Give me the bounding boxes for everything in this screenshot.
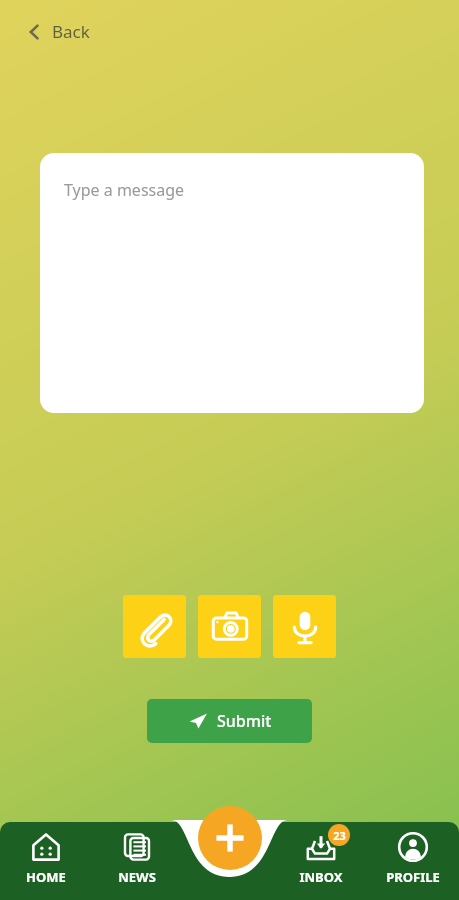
button[interactable]: HOME xyxy=(0,822,91,900)
staticText: NEWS xyxy=(118,868,156,886)
button[interactable]: Attach file xyxy=(123,595,186,658)
button[interactable]: Back xyxy=(18,14,98,49)
staticText: 23 xyxy=(333,828,346,843)
staticText: Back xyxy=(52,20,90,43)
button[interactable]: Type a message xyxy=(40,153,424,413)
staticText: Submit xyxy=(217,710,272,732)
button[interactable]: Record audio xyxy=(273,595,336,658)
button[interactable]: 23 xyxy=(275,822,367,900)
staticText: Type a message xyxy=(64,179,185,201)
button[interactable]: Take photo xyxy=(198,595,261,658)
button[interactable]: Create new xyxy=(198,806,262,870)
button[interactable]: PROFILE xyxy=(367,822,459,900)
button[interactable]: Submit xyxy=(147,699,312,743)
staticText: PROFILE xyxy=(386,868,440,886)
staticText: HOME xyxy=(26,868,66,886)
button[interactable]: NEWS xyxy=(91,822,183,900)
staticText: INBOX xyxy=(299,868,343,886)
